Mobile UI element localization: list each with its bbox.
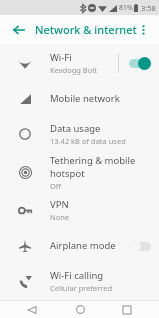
staticText: 3:58 (141, 3, 156, 13)
button[interactable]: Wi-Fi (0, 44, 159, 82)
button[interactable]: VPN (0, 191, 159, 229)
staticText: Off (50, 181, 62, 191)
staticText: Kevdogg Bolt (50, 65, 97, 75)
button[interactable]: Back (17, 301, 47, 318)
button[interactable]: Recents (112, 301, 142, 318)
staticText: Data usage (50, 122, 101, 135)
staticText: VPN (50, 198, 69, 211)
button[interactable]: Mobile network (0, 82, 159, 115)
button[interactable]: Home (65, 301, 95, 318)
staticText: Wi-Fi calling (50, 269, 104, 282)
button[interactable]: Wi-Fi toggle (119, 48, 159, 78)
button[interactable]: Data usage (0, 115, 159, 153)
button[interactable]: Tethering & mobile hotspot (0, 153, 159, 191)
staticText: Cellular preferred (50, 283, 113, 293)
staticText: Tethering & mobile hotspot (50, 154, 151, 180)
staticText: Airplane mode (50, 239, 116, 252)
button[interactable]: Back (9, 20, 29, 40)
button[interactable]: More options (133, 20, 153, 40)
staticText: 13.42 kB of data used (50, 136, 126, 146)
button[interactable]: Airplane mode toggle (119, 231, 159, 261)
button[interactable]: Wi-Fi calling (0, 262, 159, 300)
staticText: 81% (119, 3, 133, 13)
staticText: Network & internet (35, 22, 137, 37)
button[interactable]: Airplane mode (0, 229, 159, 262)
staticText: Wi-Fi (50, 51, 72, 64)
staticText: None (50, 212, 70, 222)
staticText: Mobile network (50, 92, 120, 105)
